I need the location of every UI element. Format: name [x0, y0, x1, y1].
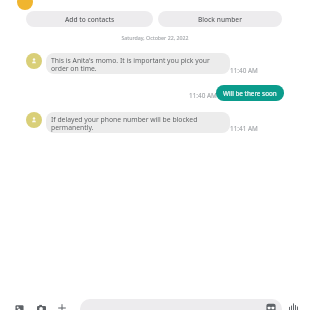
staticText: 11:40 AM: [189, 91, 217, 100]
button[interactable]: Block number: [158, 11, 282, 27]
staticText: Add to contacts: [65, 15, 115, 24]
staticText: 11:41 AM: [230, 124, 258, 133]
staticText: This is Anita's momo. It is important yo…: [51, 56, 225, 73]
button[interactable]: Gallery: [15, 304, 24, 310]
button[interactable]: If delayed your phone number will be blo…: [46, 112, 230, 133]
staticText: If delayed your phone number will be blo…: [51, 115, 225, 132]
button[interactable]: Will be there soon: [216, 85, 284, 101]
staticText: Will be there soon: [223, 89, 277, 98]
button[interactable]: Add to contacts: [26, 11, 153, 27]
button[interactable]: Attach: [57, 303, 67, 310]
button[interactable]: Stickers: [266, 303, 276, 310]
staticText: Block number: [198, 15, 242, 24]
button[interactable]: Camera: [37, 304, 46, 310]
button[interactable]: [80, 299, 282, 310]
button[interactable]: Voice message: [288, 303, 299, 310]
button[interactable]: This is Anita's momo. It is important yo…: [46, 53, 230, 74]
staticText: Saturday, October 22, 2022: [0, 34, 310, 41]
staticText: 11:40 AM: [230, 66, 258, 75]
